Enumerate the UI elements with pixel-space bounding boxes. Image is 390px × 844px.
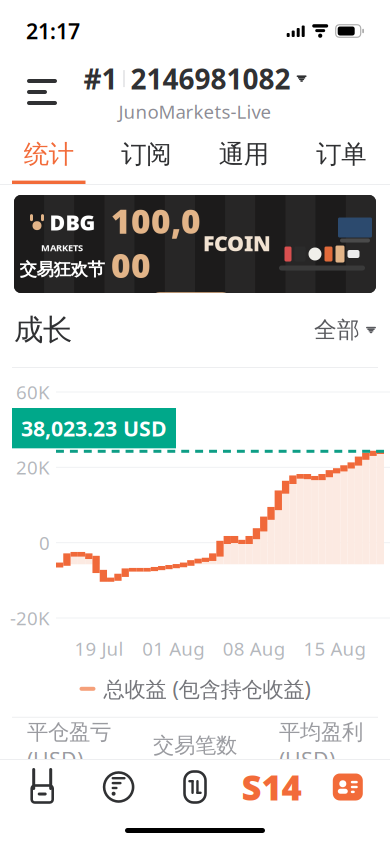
button[interactable]: 信号 bbox=[80, 760, 157, 814]
staticText: S14 bbox=[241, 764, 301, 810]
staticText: 19 Jul bbox=[75, 636, 124, 661]
button[interactable]: 订阅 bbox=[97, 128, 195, 184]
staticText: MARKETS bbox=[41, 241, 83, 254]
staticText: 平均盈利 (USD) bbox=[279, 717, 363, 774]
staticText: 01 Aug bbox=[142, 636, 204, 661]
button[interactable]: 订单 bbox=[292, 128, 390, 184]
button[interactable]: 交易狂欢节 100,000 FCOIN 立即查看 bbox=[0, 185, 390, 293]
staticText: -20K bbox=[10, 606, 50, 630]
staticText: .97 bbox=[334, 796, 361, 822]
staticText: 交易狂欢节 bbox=[19, 259, 104, 280]
staticText: 38,023.23 USD bbox=[21, 414, 167, 442]
staticText: 800 bbox=[280, 786, 334, 826]
staticText: 交易笔数 bbox=[153, 732, 237, 758]
button[interactable]: S14 社区 bbox=[233, 760, 310, 814]
staticText: 交易即领 bbox=[145, 169, 237, 197]
staticText: 订单 bbox=[316, 139, 366, 170]
button[interactable]: 统计 bbox=[0, 128, 97, 184]
staticText: .23 bbox=[104, 796, 131, 822]
staticText: 订阅 bbox=[121, 139, 171, 170]
staticText: 100,000 bbox=[111, 199, 201, 287]
staticText: 统计 bbox=[24, 139, 74, 170]
button[interactable]: 全部 bbox=[314, 310, 376, 350]
staticText: 15 Aug bbox=[303, 636, 365, 661]
staticText: JunoMarkets-Live bbox=[118, 99, 271, 124]
button[interactable]: 我的 bbox=[310, 760, 386, 814]
staticText: 08 Aug bbox=[223, 636, 285, 661]
button[interactable]: Menu bbox=[16, 66, 68, 118]
staticText: 60K bbox=[16, 380, 50, 404]
staticText: 成长 bbox=[14, 312, 72, 348]
staticText: 148 bbox=[168, 770, 222, 811]
staticText: 平仓盈亏 (USD) bbox=[27, 717, 111, 774]
staticText: #1 bbox=[83, 60, 117, 97]
button[interactable]: 通用 bbox=[195, 128, 292, 184]
staticText: FCOIN bbox=[203, 229, 271, 257]
staticText: DBG bbox=[49, 208, 95, 236]
staticText: 2146981082 bbox=[131, 60, 291, 97]
button[interactable]: 首页 bbox=[4, 760, 80, 814]
staticText: 总收益 (包含持仓收益) bbox=[103, 675, 310, 703]
staticText: 21:17 bbox=[26, 17, 80, 45]
staticText: 0 bbox=[39, 530, 50, 555]
button[interactable]: 交易 bbox=[157, 760, 233, 814]
staticText: 38,023 bbox=[6, 786, 104, 826]
staticText: 通用 bbox=[219, 139, 269, 170]
staticText: 全部 bbox=[314, 316, 360, 344]
staticText: 20K bbox=[16, 455, 50, 480]
